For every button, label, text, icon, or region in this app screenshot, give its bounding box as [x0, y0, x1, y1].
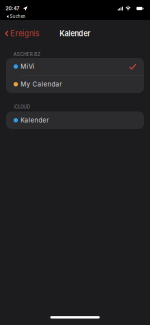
- staticText: My Calendar: [21, 80, 62, 88]
- staticText: 20:47: [5, 5, 19, 11]
- staticText: Kalender: [59, 29, 90, 38]
- staticText: ASCHER.BZ: [13, 51, 40, 57]
- button[interactable]: Ereignis: [0, 21, 43, 45]
- button[interactable]: Kalender: [6, 111, 144, 129]
- button[interactable]: My Calendar: [6, 75, 144, 93]
- staticText: Suchen: [10, 14, 26, 19]
- staticText: iCLOUD: [13, 104, 30, 109]
- staticText: Kalender: [21, 116, 49, 124]
- button[interactable]: MiVi: [6, 58, 144, 75]
- staticText: Ereignis: [10, 29, 39, 38]
- staticText: MiVi: [21, 63, 35, 70]
